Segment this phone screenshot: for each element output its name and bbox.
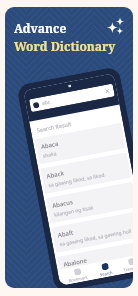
staticText: Search: [100, 270, 113, 277]
staticText: Advance: [14, 20, 67, 36]
staticText: Abaca: [40, 140, 60, 151]
button[interactable]: Abacus: [46, 182, 133, 224]
staticText: abc: [41, 98, 51, 107]
button[interactable]: Aback: [40, 152, 131, 194]
button[interactable]: Sparkle: [106, 15, 126, 35]
staticText: Bookmark: [68, 274, 89, 283]
staticText: Search Result: [36, 120, 72, 133]
button[interactable]: Translate: [120, 256, 133, 273]
button[interactable]: Abalone: [57, 240, 133, 282]
button[interactable]: Search: [96, 262, 115, 278]
staticText: sa gawing likod, sa gawing huli: [59, 228, 132, 248]
staticText: Abaft: [57, 228, 74, 239]
staticText: Abacus: [52, 198, 74, 210]
staticText: Translate: [123, 264, 133, 273]
button[interactable]: Bookmark: [65, 266, 91, 284]
staticText: Word Dictionary: [14, 38, 116, 54]
staticText: sa gawing likod, sa likod: [48, 172, 105, 189]
staticText: kilangan ng tisak: [53, 204, 94, 219]
staticText: isang uri ng kabibe: [65, 262, 110, 278]
button[interactable]: Abaft: [51, 211, 133, 253]
button[interactable]: abc: [29, 83, 115, 112]
staticText: shaka: [42, 150, 57, 160]
button[interactable]: Abaca: [34, 123, 126, 165]
staticText: Aback: [46, 169, 65, 180]
staticText: Abalone: [63, 256, 88, 269]
